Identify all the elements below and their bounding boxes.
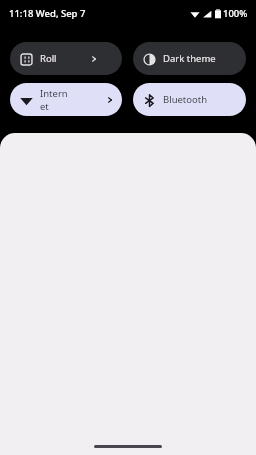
staticText: Dark theme <box>163 52 216 65</box>
button[interactable]: Roll <box>10 42 122 75</box>
staticText: 100% <box>223 7 248 20</box>
staticText: 11:18 Wed, Sep 7 <box>9 7 86 20</box>
staticText: Bluetooth <box>163 93 208 106</box>
staticText: Roll <box>40 52 57 65</box>
button[interactable]: Bluetooth <box>133 83 246 116</box>
staticText: Internet <box>40 87 73 113</box>
button[interactable]: Dark theme <box>133 42 246 75</box>
button[interactable]: Internet <box>10 83 122 116</box>
